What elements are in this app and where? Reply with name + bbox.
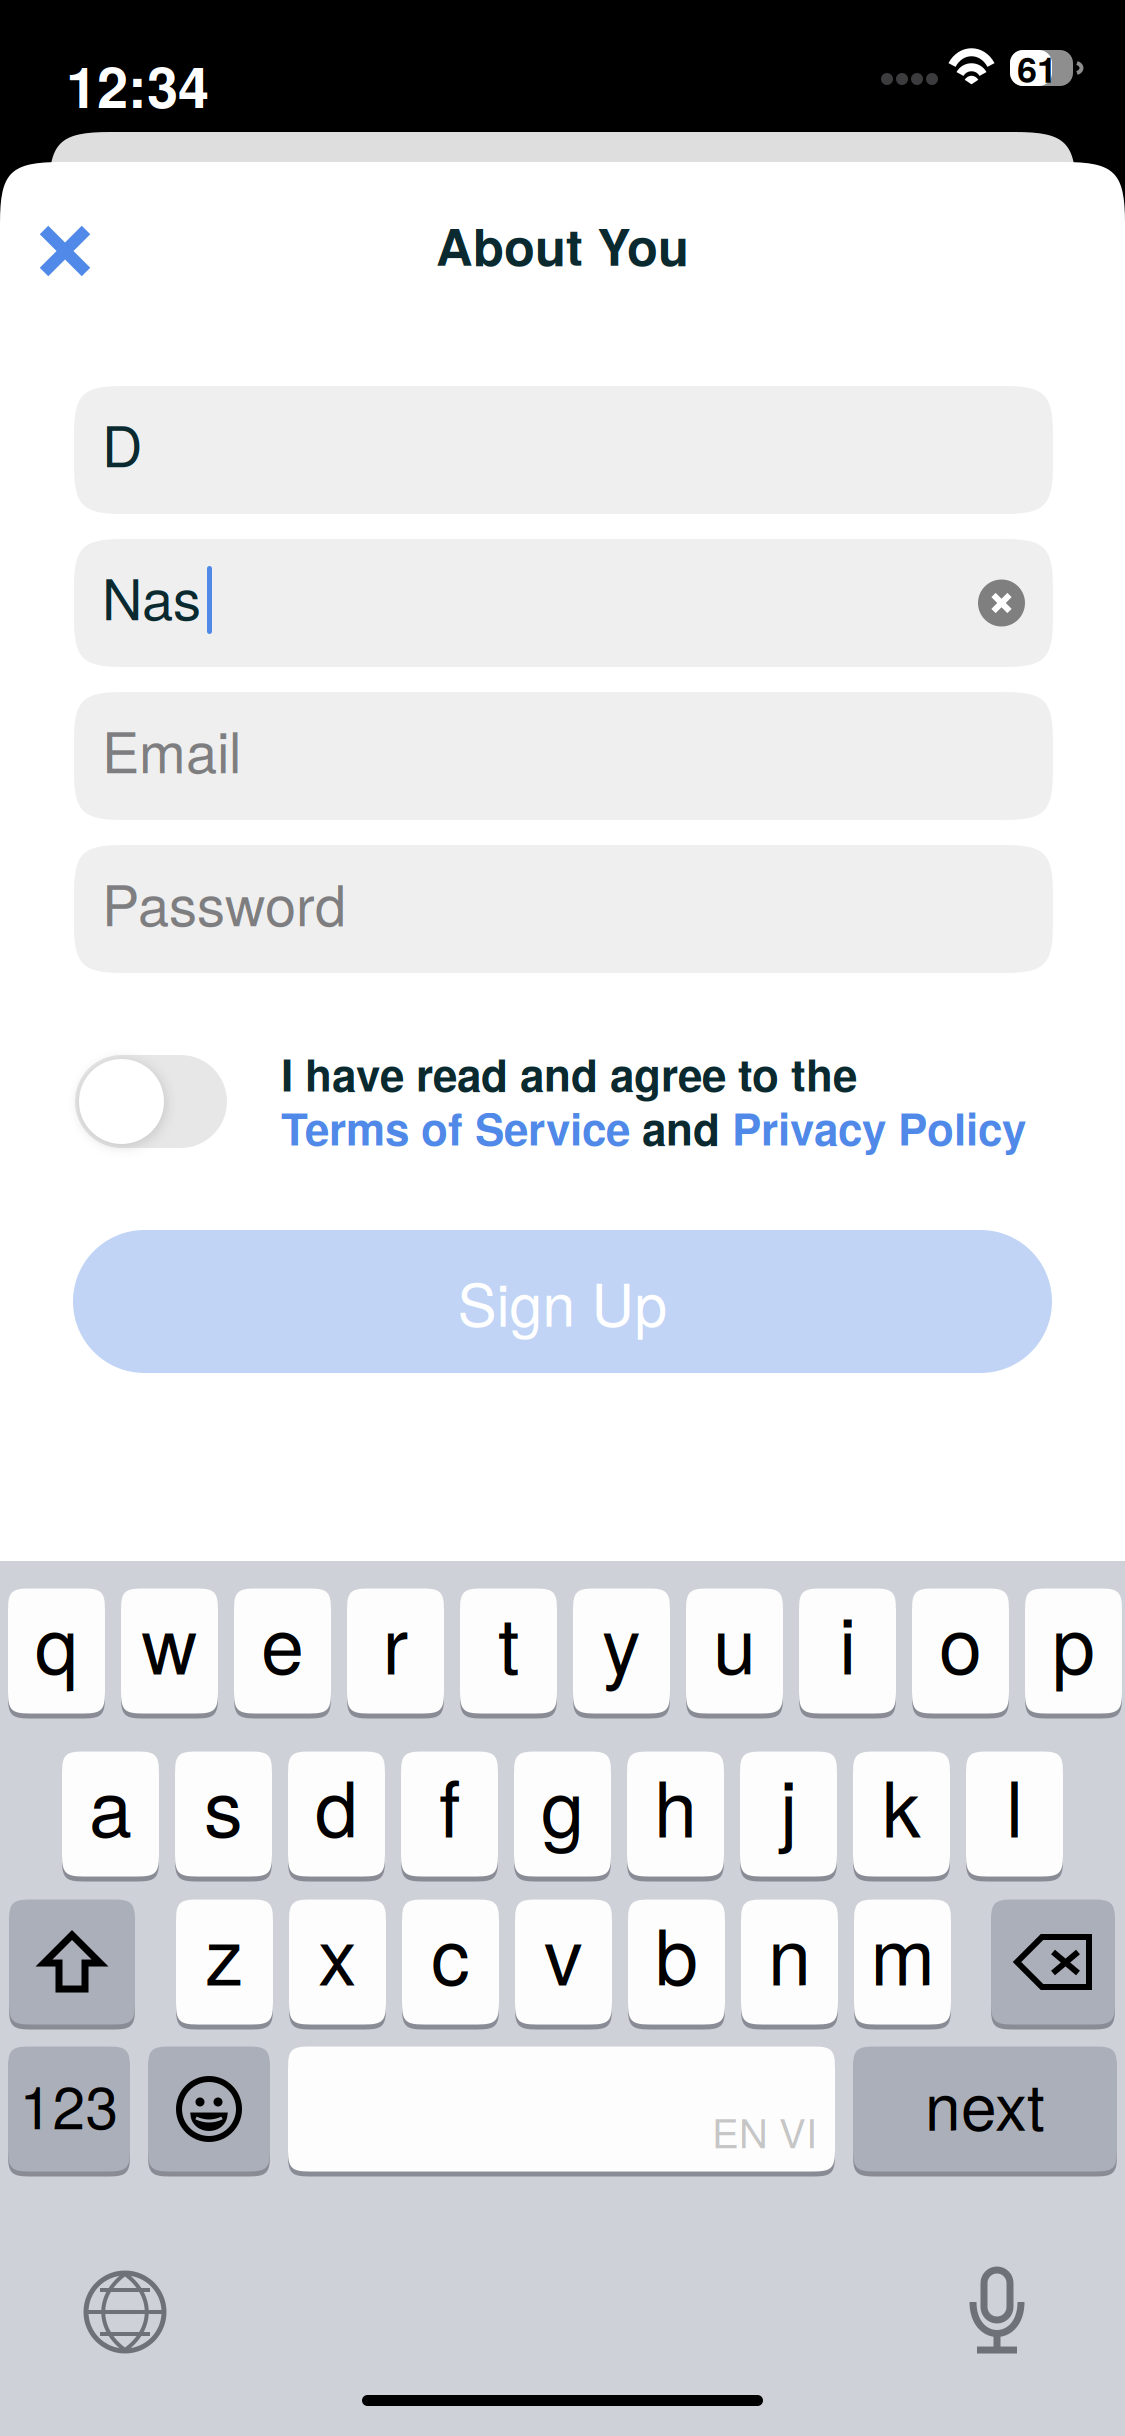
staticText: n <box>768 1897 811 2007</box>
button[interactable]: Space <box>288 2044 835 2174</box>
button[interactable]: j <box>740 1749 837 1879</box>
button[interactable]: n <box>741 1897 838 2027</box>
button[interactable]: y <box>573 1586 670 1716</box>
button[interactable]: w <box>121 1586 218 1716</box>
staticText: l <box>1006 1749 1023 1859</box>
staticText: Password <box>102 862 346 942</box>
button[interactable]: e <box>234 1586 331 1716</box>
staticText: d <box>315 1749 358 1859</box>
button[interactable]: Agree to terms <box>75 1055 227 1148</box>
staticText: i <box>839 1586 856 1696</box>
staticText: Email <box>102 709 241 789</box>
staticText: k <box>882 1749 921 1859</box>
button[interactable]: 123 <box>8 2044 130 2174</box>
staticText: About You <box>436 209 689 281</box>
button[interactable]: Sign Up <box>73 1230 1052 1373</box>
button[interactable]: Shift <box>9 1897 135 2027</box>
button[interactable]: h <box>627 1749 724 1879</box>
staticText: e <box>261 1586 304 1696</box>
button[interactable]: o <box>912 1586 1009 1716</box>
staticText: u <box>713 1586 756 1696</box>
button[interactable]: i <box>799 1586 896 1716</box>
staticText: g <box>541 1749 584 1859</box>
staticText: Privacy Policy <box>732 1096 1026 1159</box>
staticText: x <box>318 1897 357 2007</box>
button[interactable]: Terms of Service <box>281 1096 630 1159</box>
button[interactable]: x <box>289 1897 386 2027</box>
button[interactable]: d <box>288 1749 385 1879</box>
button[interactable]: u <box>686 1586 783 1716</box>
button[interactable]: Email <box>74 692 1053 820</box>
staticText: j <box>780 1749 797 1859</box>
staticText: Sign Up <box>457 1259 667 1343</box>
staticText: next <box>925 2057 1045 2149</box>
button[interactable]: g <box>514 1749 611 1879</box>
button[interactable]: Privacy Policy <box>732 1096 1026 1159</box>
button[interactable]: l <box>966 1749 1063 1879</box>
button[interactable]: t <box>460 1586 557 1716</box>
staticText: o <box>939 1586 982 1696</box>
staticText: EN VI <box>712 2102 817 2159</box>
staticText: t <box>498 1586 519 1696</box>
button[interactable]: v <box>515 1897 612 2027</box>
staticText: f <box>439 1749 460 1859</box>
staticText: 61 <box>1017 42 1057 94</box>
staticText: s <box>204 1749 243 1859</box>
button[interactable]: Emoji <box>148 2044 270 2174</box>
button[interactable]: Nas <box>74 539 1053 667</box>
button[interactable]: c <box>402 1897 499 2027</box>
button[interactable]: Password <box>74 845 1053 973</box>
staticText: I have read and agree to the <box>281 1042 857 1105</box>
staticText: p <box>1052 1586 1095 1696</box>
staticText: r <box>382 1586 408 1696</box>
button[interactable]: Delete <box>991 1897 1115 2027</box>
button[interactable]: next <box>853 2044 1117 2174</box>
staticText: h <box>654 1749 697 1859</box>
staticText: y <box>602 1586 641 1696</box>
button[interactable]: Close <box>10 196 120 306</box>
button[interactable]: b <box>628 1897 725 2027</box>
button[interactable]: f <box>401 1749 498 1879</box>
staticText: 123 <box>19 2062 118 2146</box>
staticText: Terms of Service <box>281 1096 630 1159</box>
staticText: 12:34 <box>66 45 209 125</box>
button[interactable]: Dictation <box>969 2268 1025 2354</box>
button[interactable]: a <box>62 1749 159 1879</box>
staticText: b <box>655 1897 698 2007</box>
button[interactable]: k <box>853 1749 950 1879</box>
staticText: w <box>141 1586 197 1696</box>
button[interactable]: Next keyboard <box>86 2273 164 2351</box>
staticText: and <box>630 1096 732 1159</box>
button[interactable]: s <box>175 1749 272 1879</box>
button[interactable]: p <box>1025 1586 1122 1716</box>
staticText: c <box>431 1897 470 2007</box>
button[interactable]: D <box>74 386 1053 514</box>
staticText: m <box>870 1897 934 2007</box>
staticText: a <box>89 1749 132 1859</box>
staticText: v <box>544 1897 583 2007</box>
button[interactable]: r <box>347 1586 444 1716</box>
button[interactable]: m <box>854 1897 951 2027</box>
staticText: Nas <box>102 556 201 636</box>
staticText: q <box>35 1586 78 1696</box>
button[interactable]: z <box>176 1897 273 2027</box>
button[interactable]: q <box>8 1586 105 1716</box>
staticText: z <box>205 1897 244 2007</box>
staticText: D <box>102 403 142 483</box>
